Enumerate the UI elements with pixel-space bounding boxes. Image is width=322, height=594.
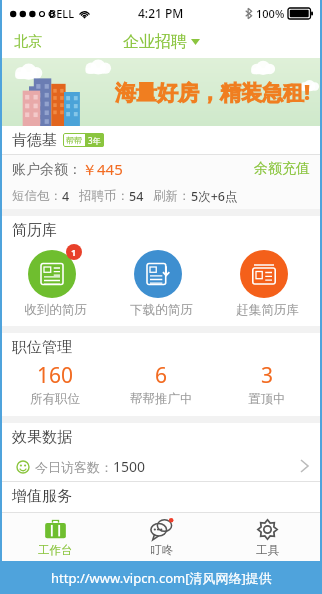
staticText: 叮咚 xyxy=(150,543,173,557)
staticText: 赶集简历库 xyxy=(236,302,299,318)
staticText: 工作台 xyxy=(38,543,73,557)
staticText: 帮帮推广中 xyxy=(130,391,193,407)
button[interactable]: 1 xyxy=(2,244,108,318)
staticText: 北京 xyxy=(14,33,42,51)
staticText: 帮帮 xyxy=(66,135,82,145)
button[interactable]: 今日访客数： xyxy=(2,451,320,481)
staticText: 5次+6点 xyxy=(191,188,238,205)
staticText: 1500 xyxy=(113,457,146,476)
staticText: 海量好房，精装急租! xyxy=(115,78,311,107)
staticText: 工具 xyxy=(256,543,279,557)
button[interactable]: 3 xyxy=(214,361,320,407)
staticText: 4:21 PM xyxy=(138,5,184,21)
staticText: 增值服务 xyxy=(12,487,72,506)
button[interactable]: 叮咚 xyxy=(108,513,214,561)
staticText: 3 xyxy=(261,361,274,390)
staticText: 效果数据 xyxy=(12,428,72,447)
staticText: BELL xyxy=(49,6,75,21)
button[interactable]: 工具 xyxy=(214,513,320,561)
staticText: 招聘币： xyxy=(79,188,129,204)
staticText: 短信包： xyxy=(12,188,62,204)
staticText: 下载的简历 xyxy=(130,302,193,318)
button[interactable]: 下载的简历 xyxy=(108,244,214,318)
staticText: 4 xyxy=(62,188,70,205)
staticText: 收到的简历 xyxy=(24,302,87,318)
staticText: 简历库 xyxy=(12,221,57,240)
button[interactable]: 赶集简历库 xyxy=(214,244,320,318)
button[interactable]: 北京 xyxy=(2,28,54,56)
staticText: 余额充值 xyxy=(254,160,310,178)
staticText: 3年 xyxy=(88,135,101,146)
button[interactable]: 工作台 xyxy=(2,513,108,561)
staticText: 160 xyxy=(37,361,74,390)
staticText: 6 xyxy=(155,361,168,390)
staticText: 1 xyxy=(71,246,77,258)
button[interactable]: 余额充值 xyxy=(244,156,320,182)
staticText: 所有职位 xyxy=(30,391,80,407)
staticText: 企业招聘 xyxy=(123,32,187,52)
staticText: 刷新： xyxy=(153,188,191,204)
button[interactable]: 160 xyxy=(2,361,108,407)
staticText: 今日访客数： xyxy=(35,459,113,475)
staticText: http://www.vipcn.com[清风网络]提供 xyxy=(51,569,272,587)
staticText: 54 xyxy=(129,188,144,205)
staticText: 100% xyxy=(256,6,285,21)
staticText: 置顶中 xyxy=(248,391,286,407)
button[interactable]: 企业招聘 xyxy=(115,28,208,56)
staticText: 肯德基 xyxy=(12,131,57,150)
staticText: 职位管理 xyxy=(12,338,72,357)
staticText: 账户余额： xyxy=(12,161,82,179)
button[interactable]: 海量好房，精装急租! xyxy=(2,58,320,126)
button[interactable]: 6 xyxy=(108,361,214,407)
staticText: ￥445 xyxy=(82,159,123,179)
